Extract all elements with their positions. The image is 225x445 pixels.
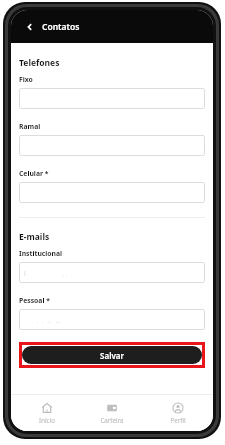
staticText: Início: [39, 416, 55, 424]
button[interactable]: . . . ..: [19, 309, 205, 330]
button[interactable]: Salvar: [22, 346, 202, 364]
button[interactable]: Voltar: [19, 16, 41, 38]
staticText: Carteira: [100, 416, 124, 424]
staticText: E-mails: [19, 231, 50, 243]
button[interactable]: [19, 182, 205, 203]
staticText: Salvar: [100, 350, 124, 361]
staticText: . . . ..: [24, 316, 60, 324]
button[interactable]: [19, 135, 205, 156]
staticText: Institucional: [19, 249, 63, 258]
staticText: Pessoal *: [19, 296, 50, 305]
staticText: l . .: [24, 269, 68, 277]
staticText: Fixo: [19, 75, 33, 84]
button[interactable]: l . .: [19, 262, 205, 283]
button[interactable]: Perfil: [148, 399, 208, 427]
button[interactable]: [19, 88, 205, 109]
button[interactable]: Início: [17, 399, 77, 427]
staticText: Contatos: [42, 21, 80, 33]
staticText: Perfil: [170, 416, 186, 424]
staticText: Celular *: [19, 169, 49, 178]
staticText: Ramal: [19, 122, 41, 131]
button[interactable]: Carteira: [82, 399, 142, 427]
staticText: Telefones: [19, 57, 60, 69]
